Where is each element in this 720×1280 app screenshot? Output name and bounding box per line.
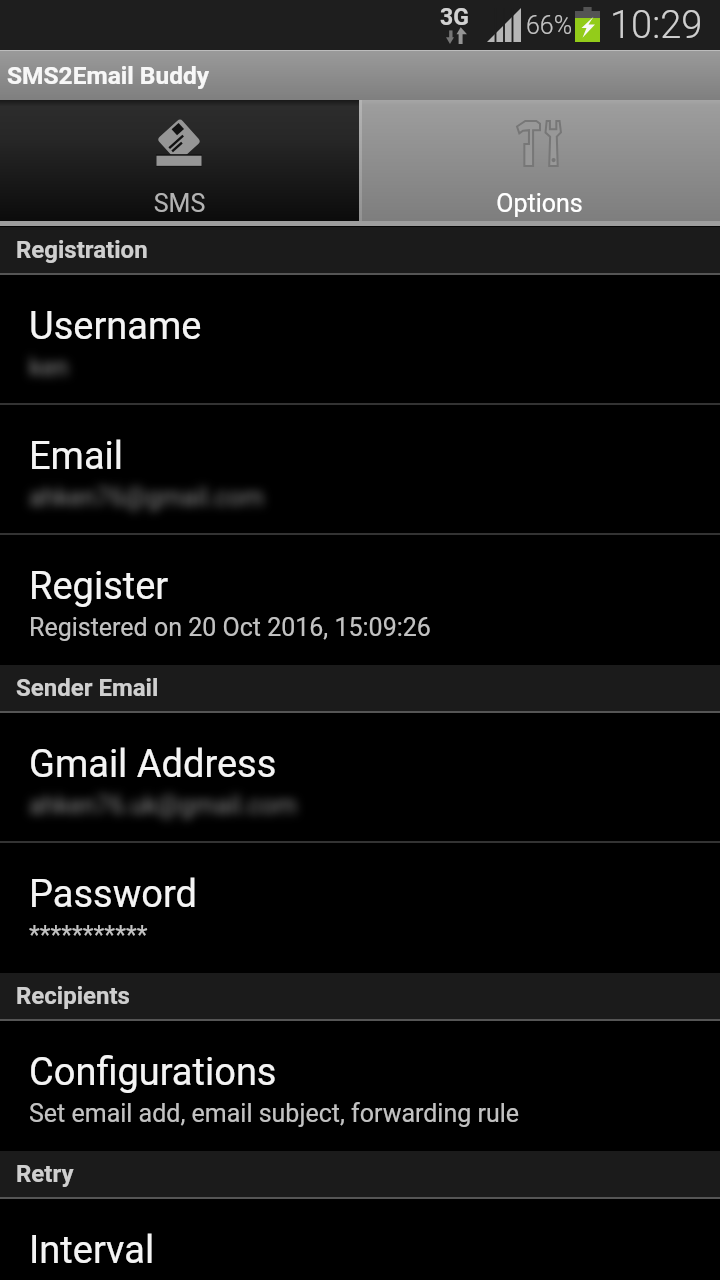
staticText: Configurations: [29, 1050, 277, 1095]
button[interactable]: SMS: [0, 100, 359, 227]
staticText: Options: [359, 189, 720, 218]
button[interactable]: Email: [0, 405, 720, 535]
staticText: ahken76.uk@gmail.com: [29, 791, 298, 820]
button[interactable]: Password: [0, 843, 720, 973]
button[interactable]: Interval: [0, 1199, 720, 1280]
staticText: SMS: [0, 189, 359, 218]
staticText: 10:29: [610, 3, 703, 48]
staticText: Password: [29, 872, 197, 917]
button[interactable]: Options: [359, 100, 720, 227]
staticText: Register: [29, 564, 169, 609]
staticText: Retry: [16, 1160, 74, 1188]
staticText: ***********: [29, 921, 148, 950]
staticText: Gmail Address: [29, 742, 277, 787]
staticText: ahken76@gmail.com: [29, 483, 264, 512]
button[interactable]: Configurations: [0, 1021, 720, 1151]
staticText: SMS2Email Buddy: [7, 61, 210, 90]
staticText: Recipients: [16, 982, 130, 1010]
button[interactable]: Register: [0, 535, 720, 665]
staticText: Email: [29, 434, 124, 479]
button[interactable]: Username: [0, 275, 720, 405]
staticText: Interval: [29, 1228, 155, 1273]
staticText: Registered on 20 Oct 2016, 15:09:26: [29, 613, 431, 642]
staticText: 3G: [440, 4, 469, 31]
staticText: ken: [29, 353, 69, 382]
staticText: 66%: [526, 11, 573, 40]
staticText: Set email add, email subject, forwarding…: [29, 1099, 520, 1128]
staticText: Username: [29, 304, 202, 349]
staticText: Sender Email: [16, 674, 159, 702]
staticText: Registration: [16, 236, 148, 264]
button[interactable]: Gmail Address: [0, 713, 720, 843]
